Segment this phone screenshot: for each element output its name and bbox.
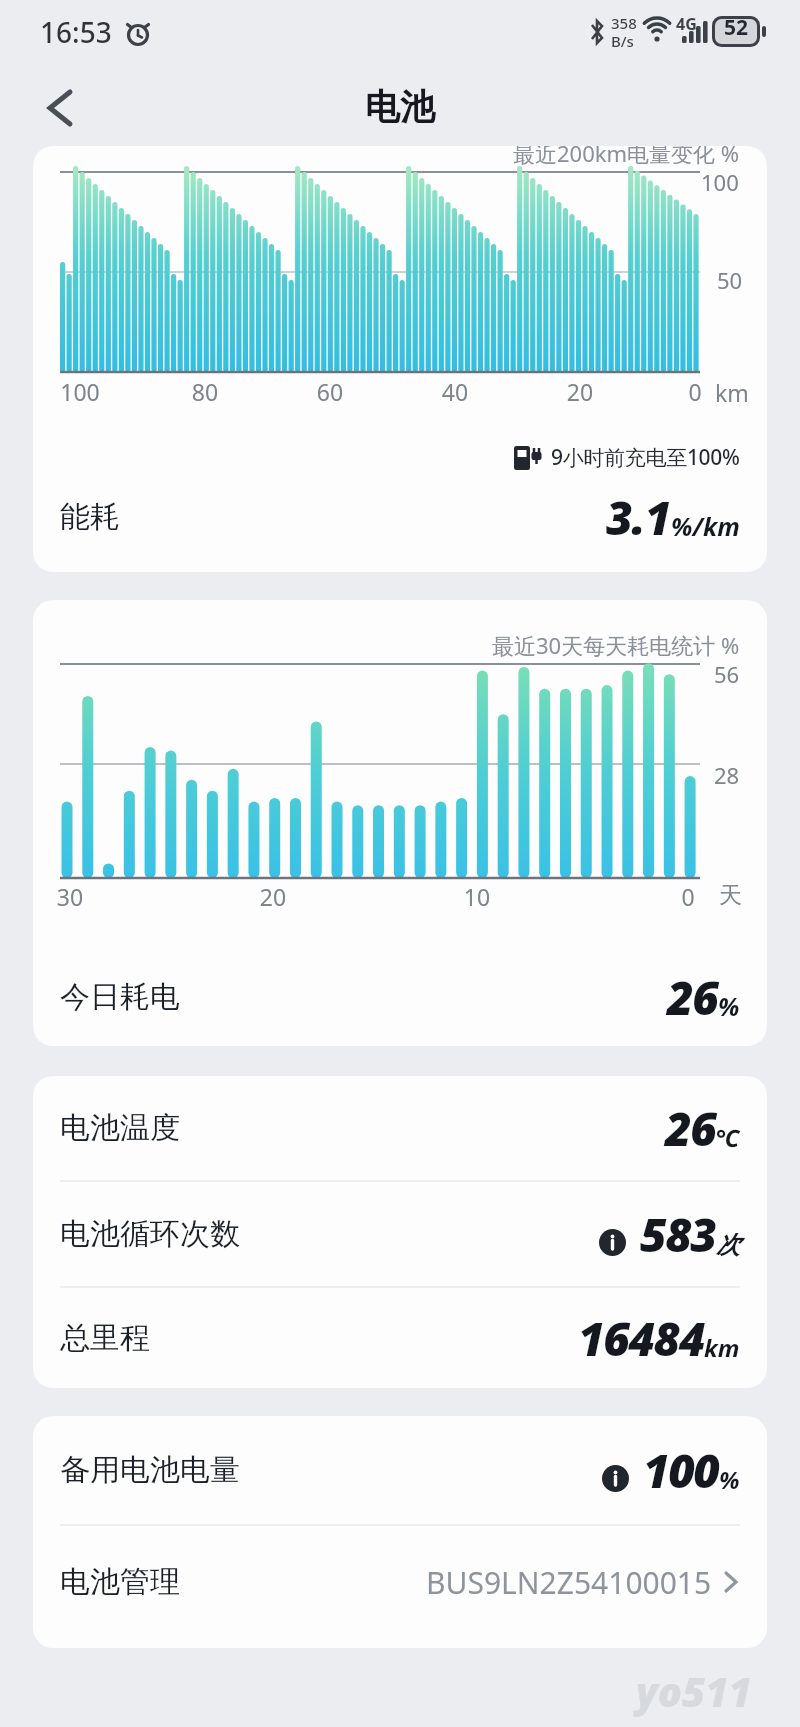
staticText: km [704, 1331, 740, 1364]
staticText: 9小时前充电至100% [551, 443, 740, 472]
staticText: BUS9LN2Z54100015 [426, 1562, 712, 1603]
staticText: 最近200km电量变化 % [513, 146, 740, 168]
staticText: 0 [648, 881, 728, 912]
staticText: 100 [40, 376, 120, 407]
staticText: 次 [716, 1230, 740, 1260]
staticText: 100 [643, 1439, 719, 1502]
staticText: 备用电池电量 [60, 1451, 240, 1489]
staticText: 3.1 [606, 486, 671, 549]
staticText: 52 [712, 13, 760, 42]
staticText: 总里程 [60, 1319, 150, 1357]
button[interactable]: 9小时前充电至100% [513, 442, 740, 472]
button[interactable] [599, 1229, 626, 1256]
staticText: %/km [671, 509, 740, 543]
staticText: yo511 [636, 1664, 752, 1718]
button[interactable]: 总里程 [60, 1288, 740, 1388]
staticText: 28 [714, 760, 740, 790]
staticText: 电池 [365, 85, 435, 129]
staticText: 4G [676, 13, 697, 35]
staticText: 30 [33, 881, 110, 912]
staticText: 16484 [578, 1307, 704, 1370]
staticText: 80 [165, 376, 245, 407]
staticText: 0 [655, 376, 735, 407]
staticText: 电池温度 [60, 1109, 180, 1147]
staticText: 56 [714, 659, 740, 689]
staticText: 20 [540, 376, 620, 407]
staticText: 能耗 [60, 498, 120, 536]
staticText: ℃ [716, 1121, 740, 1154]
staticText: % [719, 1463, 740, 1496]
button[interactable]: 电池管理 [60, 1526, 740, 1638]
staticText: 20 [233, 881, 313, 912]
staticText: 10 [437, 881, 517, 912]
staticText: % [718, 989, 740, 1023]
staticText: 50 [717, 265, 743, 295]
staticText: 60 [290, 376, 370, 407]
staticText: 电池管理 [60, 1563, 180, 1601]
button[interactable]: 备用电池电量 [60, 1416, 740, 1524]
staticText: 16:53 [40, 13, 112, 51]
staticText: 26 [667, 966, 718, 1029]
staticText: 40 [415, 376, 495, 407]
staticText: 电池循环次数 [60, 1215, 240, 1253]
staticText: 26 [665, 1097, 716, 1160]
button[interactable]: 电池循环次数 [60, 1182, 740, 1286]
staticText: 今日耗电 [60, 978, 180, 1016]
staticText: B/s [611, 31, 634, 51]
staticText: 358 [611, 13, 637, 33]
button[interactable] [36, 78, 92, 134]
staticText: km [715, 377, 749, 408]
staticText: 100 [701, 167, 739, 197]
staticText: 最近30天每天耗电统计 % [492, 630, 740, 660]
staticText: 天 [719, 881, 742, 910]
button[interactable]: 电池温度 [60, 1076, 740, 1180]
button[interactable] [602, 1465, 629, 1492]
staticText: 583 [640, 1203, 716, 1266]
